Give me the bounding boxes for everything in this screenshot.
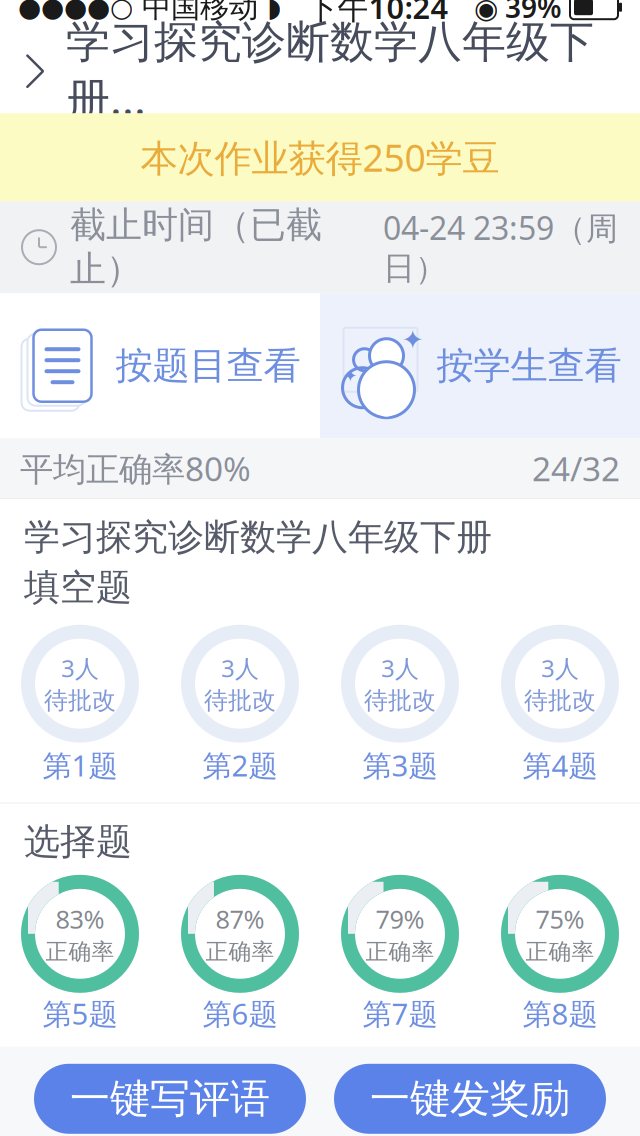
staticText: 04-24 23:59（周日） xyxy=(383,206,618,288)
button[interactable]: 3人 xyxy=(320,632,480,785)
staticText: 待批改 xyxy=(524,686,596,715)
staticText: 按学生查看 xyxy=(436,343,621,389)
staticText: 第8题 xyxy=(522,994,597,1033)
button[interactable]: 87% xyxy=(160,882,320,1033)
staticText: 正确率 xyxy=(365,938,434,965)
button[interactable]: 3人 xyxy=(480,632,640,785)
staticText: 第4题 xyxy=(522,746,597,785)
button[interactable]: 75% xyxy=(480,882,640,1033)
staticText: 3人 xyxy=(541,652,579,684)
staticText: 下午10:24 xyxy=(306,0,448,28)
staticText: 3人 xyxy=(221,652,259,684)
staticText: 24/32 xyxy=(532,446,620,490)
staticText: 79% xyxy=(375,902,424,936)
staticText: ✦ xyxy=(343,366,358,386)
staticText: 第2题 xyxy=(202,746,277,785)
staticText: 选择题 xyxy=(24,820,132,864)
button[interactable]: 79% xyxy=(320,882,480,1033)
button[interactable]: 一键发奖励 xyxy=(334,1064,606,1134)
staticText: 一键发奖励 xyxy=(370,1074,570,1123)
staticText: 第5题 xyxy=(42,994,117,1033)
button[interactable]: 3人 xyxy=(0,632,160,785)
staticText: 截止时间（已截止） xyxy=(70,203,322,291)
staticText: 87% xyxy=(215,902,264,936)
staticText: 3人 xyxy=(381,652,419,684)
staticText: ●●●●○ xyxy=(18,0,133,22)
staticText: 第1题 xyxy=(42,746,117,785)
staticText: 待批改 xyxy=(44,686,116,715)
staticText: 正确率 xyxy=(45,938,114,965)
staticText: 学习探究诊断数学八年级下册 xyxy=(24,515,492,559)
staticText: 83% xyxy=(55,902,104,936)
staticText: ◉ 39% xyxy=(474,0,562,26)
staticText: 一键写评语 xyxy=(70,1074,270,1123)
button[interactable]: 按题目查看 xyxy=(0,293,320,438)
staticText: 第6题 xyxy=(202,994,277,1033)
staticText: 本次作业获得250学豆 xyxy=(140,132,499,182)
staticText: 学习探究诊断数学八年级下册... xyxy=(66,15,594,127)
staticText: 中国移动 xyxy=(133,0,267,25)
staticText: ✦ xyxy=(401,325,423,355)
staticText: 75% xyxy=(535,902,584,936)
staticText: 待批改 xyxy=(364,686,436,715)
button[interactable]: 83% xyxy=(0,882,160,1033)
button[interactable]: 3人 xyxy=(160,632,320,785)
staticText: 第3题 xyxy=(362,746,437,785)
button[interactable]: 返回 xyxy=(0,42,52,100)
button[interactable]: ✦ xyxy=(320,293,640,438)
staticText: 按题目查看 xyxy=(115,343,300,389)
button[interactable]: 一键写评语 xyxy=(34,1064,306,1134)
staticText: ◗ xyxy=(267,0,281,22)
staticText: 待批改 xyxy=(204,686,276,715)
staticText: 平均正确率80% xyxy=(20,446,251,490)
staticText: 3人 xyxy=(61,652,99,684)
staticText: 第7题 xyxy=(362,994,437,1033)
staticText: 正确率 xyxy=(205,938,274,965)
staticText: 正确率 xyxy=(525,938,594,965)
staticText: 填空题 xyxy=(24,565,132,610)
